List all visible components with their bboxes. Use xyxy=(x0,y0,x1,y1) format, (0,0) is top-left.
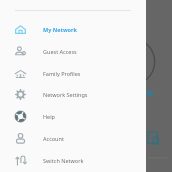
staticText: Network Settings xyxy=(43,91,88,98)
button[interactable]: Switch Network xyxy=(0,150,172,170)
button[interactable]: Guest Access xyxy=(0,41,172,61)
button[interactable]: Account xyxy=(0,128,172,148)
staticText: Switch Network xyxy=(43,157,84,164)
staticText: Help xyxy=(43,113,55,120)
staticText: My Network xyxy=(43,26,77,33)
staticText: Family Profiles xyxy=(43,70,81,77)
button[interactable]: Network Settings xyxy=(0,84,172,104)
staticText: Guest Access xyxy=(43,48,77,55)
button[interactable]: Help xyxy=(0,106,172,126)
button[interactable]: My Network xyxy=(0,19,172,39)
staticText: Account xyxy=(43,135,64,142)
button[interactable]: Family Profiles xyxy=(0,63,172,83)
